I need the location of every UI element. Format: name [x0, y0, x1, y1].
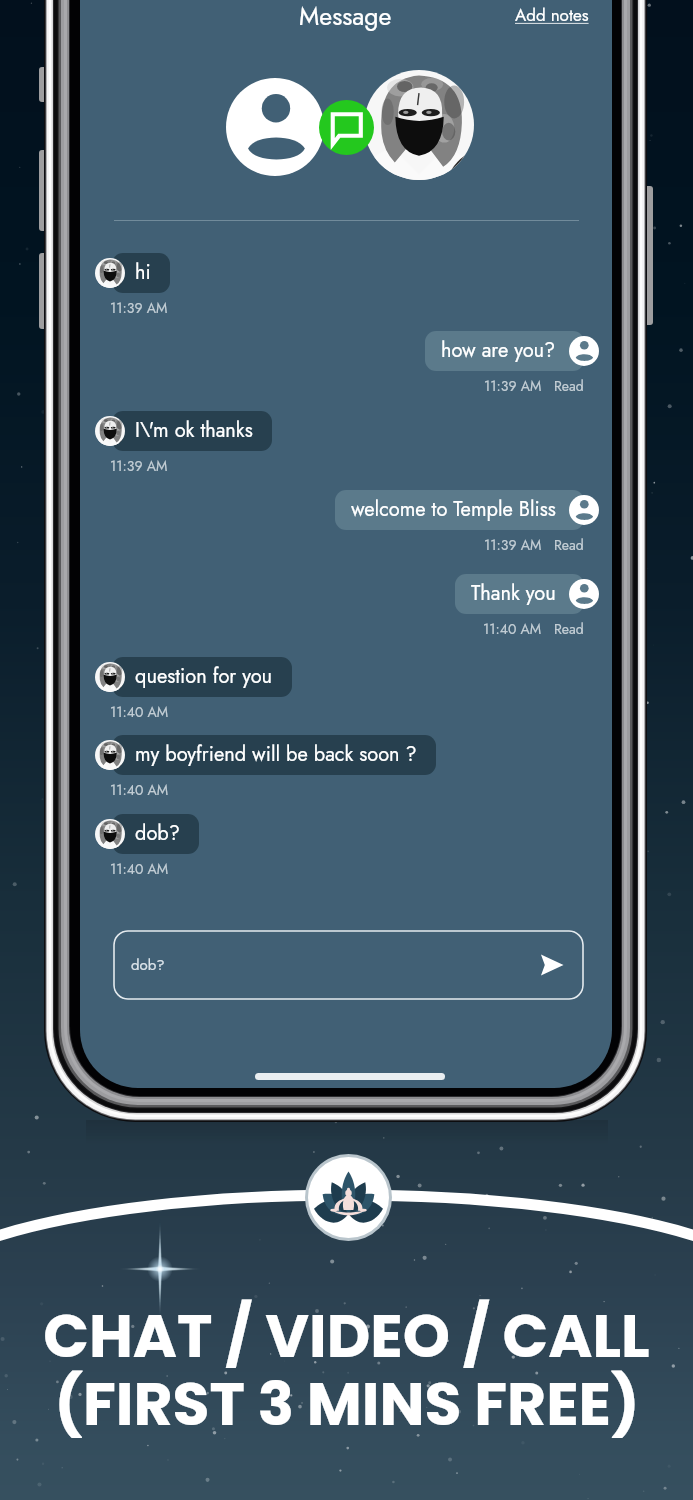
- button[interactable]: question for you: [112, 657, 292, 697]
- staticText: 11:40 AM: [110, 702, 169, 722]
- button[interactable]: Add notes: [515, 3, 589, 28]
- staticText: 11:39 AM: [484, 535, 542, 555]
- button[interactable]: my boyfriend will be back soon ?: [112, 735, 436, 775]
- staticText: dob?: [135, 819, 180, 848]
- staticText: dob?: [131, 954, 165, 976]
- button[interactable]: dob?: [113, 930, 584, 1000]
- staticText: how are you?: [441, 336, 556, 365]
- staticText: 11:39 AM: [484, 376, 542, 396]
- button[interactable]: how are you?: [425, 331, 584, 371]
- staticText: hi: [135, 258, 151, 287]
- staticText: 11:40 AM: [110, 780, 169, 800]
- button[interactable]: dob?: [112, 814, 199, 854]
- staticText: 11:40 AM: [110, 859, 169, 879]
- staticText: 11:40 AM: [483, 619, 542, 639]
- staticText: (FIRST 3 MINS FREE): [54, 1362, 640, 1446]
- button[interactable]: I\'m ok thanks: [112, 411, 272, 451]
- staticText: question for you: [135, 662, 273, 691]
- button[interactable]: Chat: [319, 100, 374, 155]
- button[interactable]: hi: [112, 253, 170, 293]
- staticText: Read: [554, 619, 584, 639]
- staticText: welcome to Temple Bliss: [351, 495, 556, 524]
- button[interactable]: welcome to Temple Bliss: [335, 490, 584, 530]
- staticText: Thank you: [471, 579, 556, 608]
- staticText: Read: [554, 376, 584, 396]
- staticText: 11:39 AM: [110, 456, 168, 476]
- staticText: CHAT / VIDEO / CALL: [43, 1294, 650, 1378]
- staticText: Message: [299, 0, 392, 34]
- staticText: Read: [554, 535, 584, 555]
- staticText: I\'m ok thanks: [135, 416, 253, 445]
- button[interactable]: Send: [540, 953, 564, 977]
- button[interactable]: Thank you: [455, 574, 584, 614]
- staticText: my boyfriend will be back soon ?: [135, 740, 417, 769]
- staticText: 11:39 AM: [110, 298, 168, 318]
